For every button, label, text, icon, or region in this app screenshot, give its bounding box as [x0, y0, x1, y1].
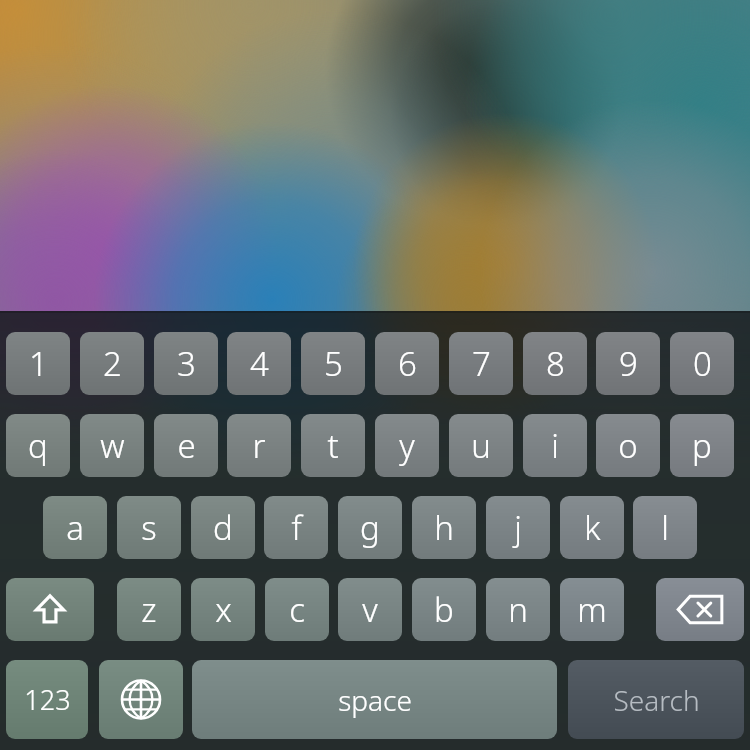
staticText: n [508, 587, 528, 632]
button[interactable]: 7 [449, 332, 513, 395]
staticText: c [289, 587, 305, 632]
button[interactable]: Backspace [656, 578, 744, 641]
staticText: 123 [24, 681, 71, 718]
button[interactable]: r [227, 414, 291, 477]
staticText: 0 [693, 341, 712, 386]
button[interactable]: 2 [80, 332, 144, 395]
button[interactable]: q [6, 414, 70, 477]
button[interactable]: b [412, 578, 476, 641]
button[interactable]: Search [568, 660, 744, 739]
staticText: 4 [250, 341, 269, 386]
button[interactable]: 0 [670, 332, 734, 395]
staticText: h [434, 505, 454, 550]
button[interactable]: w [80, 414, 144, 477]
button[interactable]: 123 [6, 660, 88, 739]
button[interactable]: 8 [523, 332, 587, 395]
button[interactable]: z [117, 578, 181, 641]
staticText: z [141, 587, 157, 632]
staticText: v [362, 587, 378, 632]
staticText: b [434, 587, 454, 632]
staticText: 1 [29, 341, 48, 386]
button[interactable]: g [338, 496, 402, 559]
button[interactable]: v [338, 578, 402, 641]
button[interactable]: e [154, 414, 218, 477]
button[interactable]: Change keyboard [99, 660, 183, 739]
staticText: 8 [546, 341, 565, 386]
button[interactable]: i [523, 414, 587, 477]
button[interactable]: m [560, 578, 624, 641]
staticText: l [661, 505, 669, 550]
button[interactable]: o [596, 414, 660, 477]
staticText: m [577, 587, 607, 632]
staticText: d [213, 505, 233, 550]
button[interactable]: l [633, 496, 697, 559]
button[interactable]: Shift [6, 578, 94, 641]
staticText: w [100, 423, 125, 468]
staticText: t [327, 423, 339, 468]
button[interactable]: d [191, 496, 255, 559]
button[interactable]: f [264, 496, 328, 559]
button[interactable]: 9 [596, 332, 660, 395]
button[interactable]: x [191, 578, 255, 641]
staticText: y [399, 423, 415, 468]
staticText: Search [613, 681, 700, 719]
button[interactable]: y [375, 414, 439, 477]
staticText: g [360, 505, 380, 550]
button[interactable]: 1 [6, 332, 70, 395]
staticText: o [618, 423, 638, 468]
staticText: 6 [398, 341, 417, 386]
staticText: 3 [177, 341, 196, 386]
button[interactable]: n [486, 578, 550, 641]
button[interactable]: 3 [154, 332, 218, 395]
button[interactable]: t [301, 414, 365, 477]
button[interactable]: 6 [375, 332, 439, 395]
button[interactable]: 4 [227, 332, 291, 395]
staticText: q [28, 423, 48, 468]
staticText: x [215, 587, 232, 632]
button[interactable]: 5 [301, 332, 365, 395]
staticText: a [66, 505, 84, 550]
button[interactable]: a [43, 496, 107, 559]
staticText: 2 [103, 341, 122, 386]
staticText: u [471, 423, 491, 468]
staticText: e [177, 423, 196, 468]
button[interactable]: j [486, 496, 550, 559]
staticText: j [514, 505, 522, 550]
button[interactable]: s [117, 496, 181, 559]
staticText: k [584, 505, 601, 550]
button[interactable]: k [560, 496, 624, 559]
button[interactable]: c [265, 578, 329, 641]
staticText: space [338, 681, 412, 719]
button[interactable]: p [670, 414, 734, 477]
button[interactable]: u [449, 414, 513, 477]
staticText: i [551, 423, 559, 468]
staticText: p [692, 423, 712, 468]
staticText: 9 [619, 341, 638, 386]
button[interactable]: space [192, 660, 557, 739]
staticText: 7 [472, 341, 491, 386]
staticText: r [252, 423, 266, 468]
button[interactable]: h [412, 496, 476, 559]
staticText: f [291, 505, 302, 550]
staticText: s [141, 505, 157, 550]
staticText: 5 [324, 341, 343, 386]
